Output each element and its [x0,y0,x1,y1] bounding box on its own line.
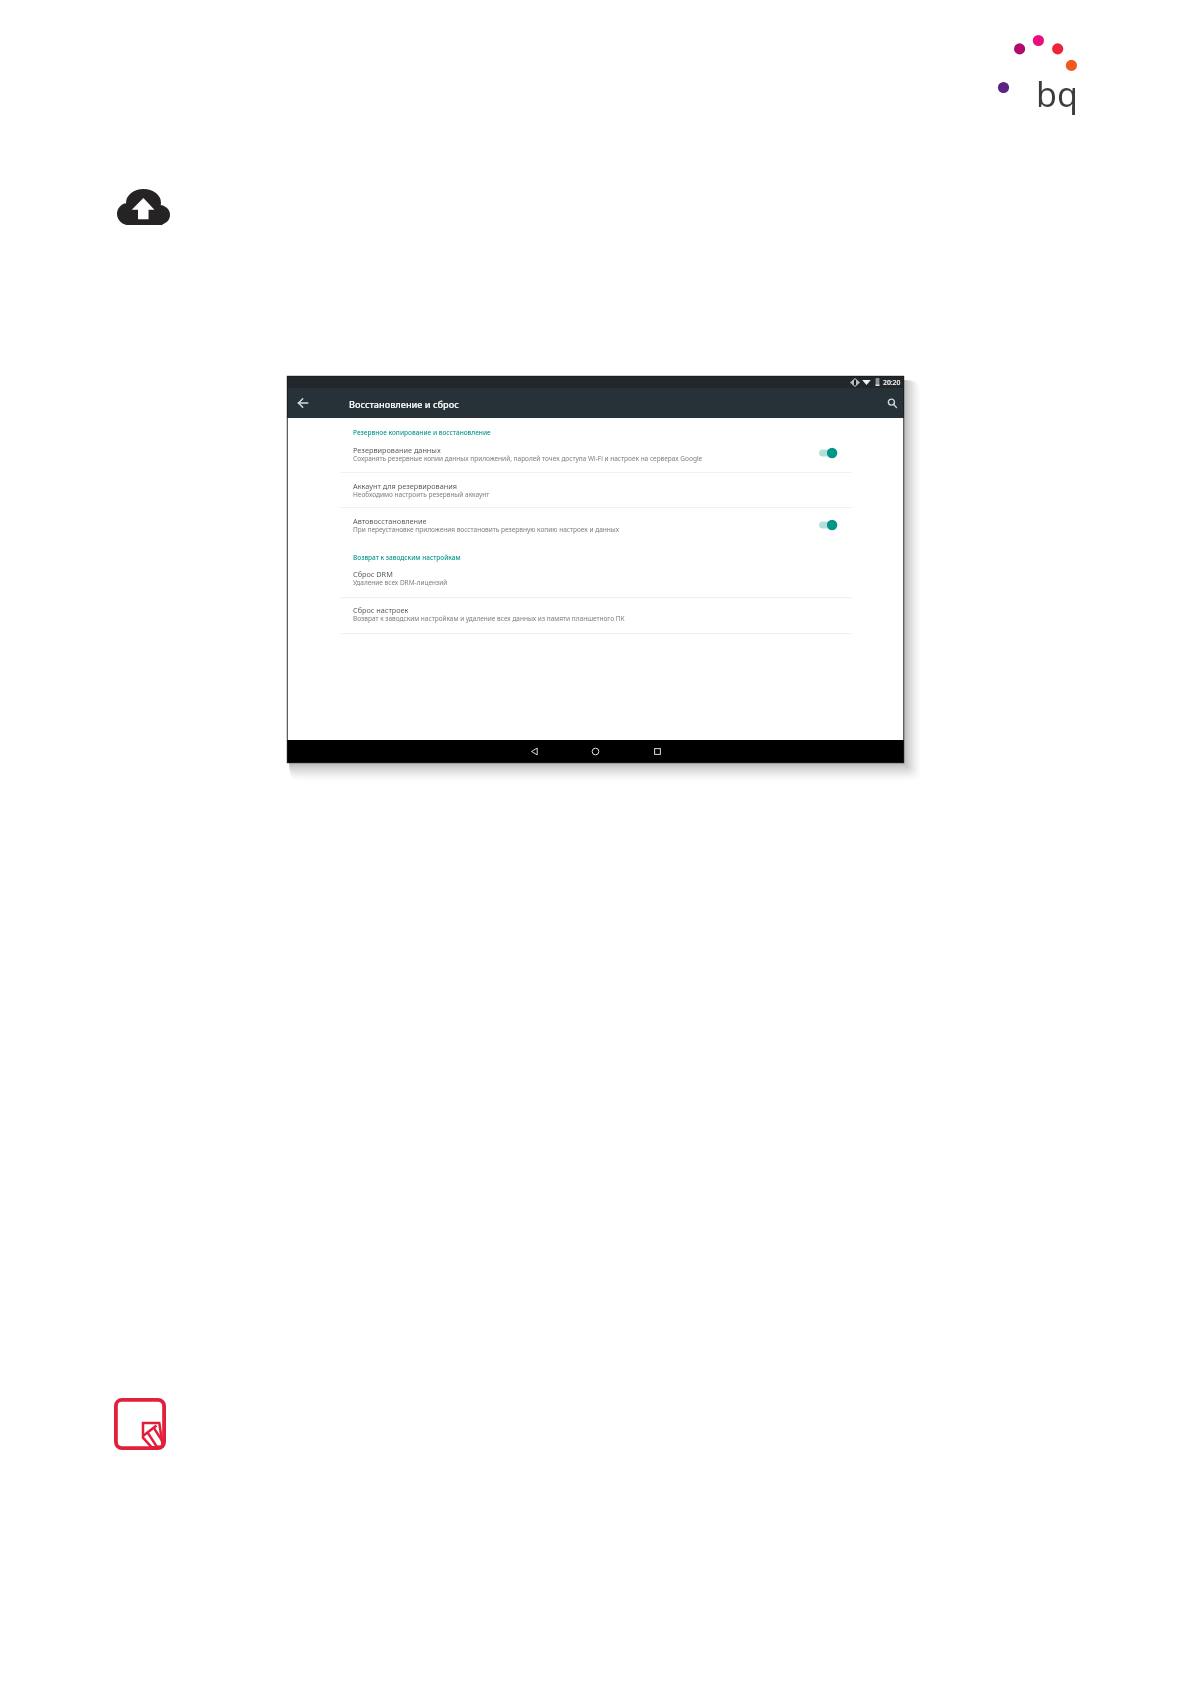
staticText: Возврат к заводским настройкам [353,553,461,562]
button[interactable]: Автовосстановление [341,513,851,538]
button[interactable]: Home [581,740,609,763]
staticText: При переустановке приложения восстановит… [353,525,620,534]
staticText: Необходимо настроить резервный аккаунт [353,490,490,499]
staticText: Резервирование данных [353,445,441,455]
staticText: Удаление всех DRM-лицензий [353,578,448,587]
button[interactable]: Toggle [816,518,838,532]
button[interactable]: Резервирование данных [341,442,851,467]
staticText: Возврат к заводским настройкам и удалени… [353,614,625,623]
staticText: Сохранять резервные копии данных приложе… [353,454,703,463]
button[interactable]: Аккаунт для резервирования [341,478,851,503]
staticText: Автовосстановление [353,516,427,526]
button[interactable]: Back [520,740,548,763]
staticText: Сброс DRM [353,569,393,579]
button[interactable]: Сброс DRM [341,566,851,591]
button[interactable]: Search [884,392,902,410]
staticText: Резервное копирование и восстановление [353,428,491,437]
button[interactable]: Back [294,394,312,412]
button[interactable]: Recents [643,740,671,763]
staticText: Сброс настроек [353,605,409,615]
staticText: Аккаунт для резервирования [353,481,458,491]
button[interactable]: Сброс настроек [341,602,851,627]
staticText: bq [1036,71,1078,117]
button[interactable]: Toggle [816,446,838,460]
staticText: 20:20 [883,378,901,387]
staticText: Восстановление и сброс [349,398,459,410]
